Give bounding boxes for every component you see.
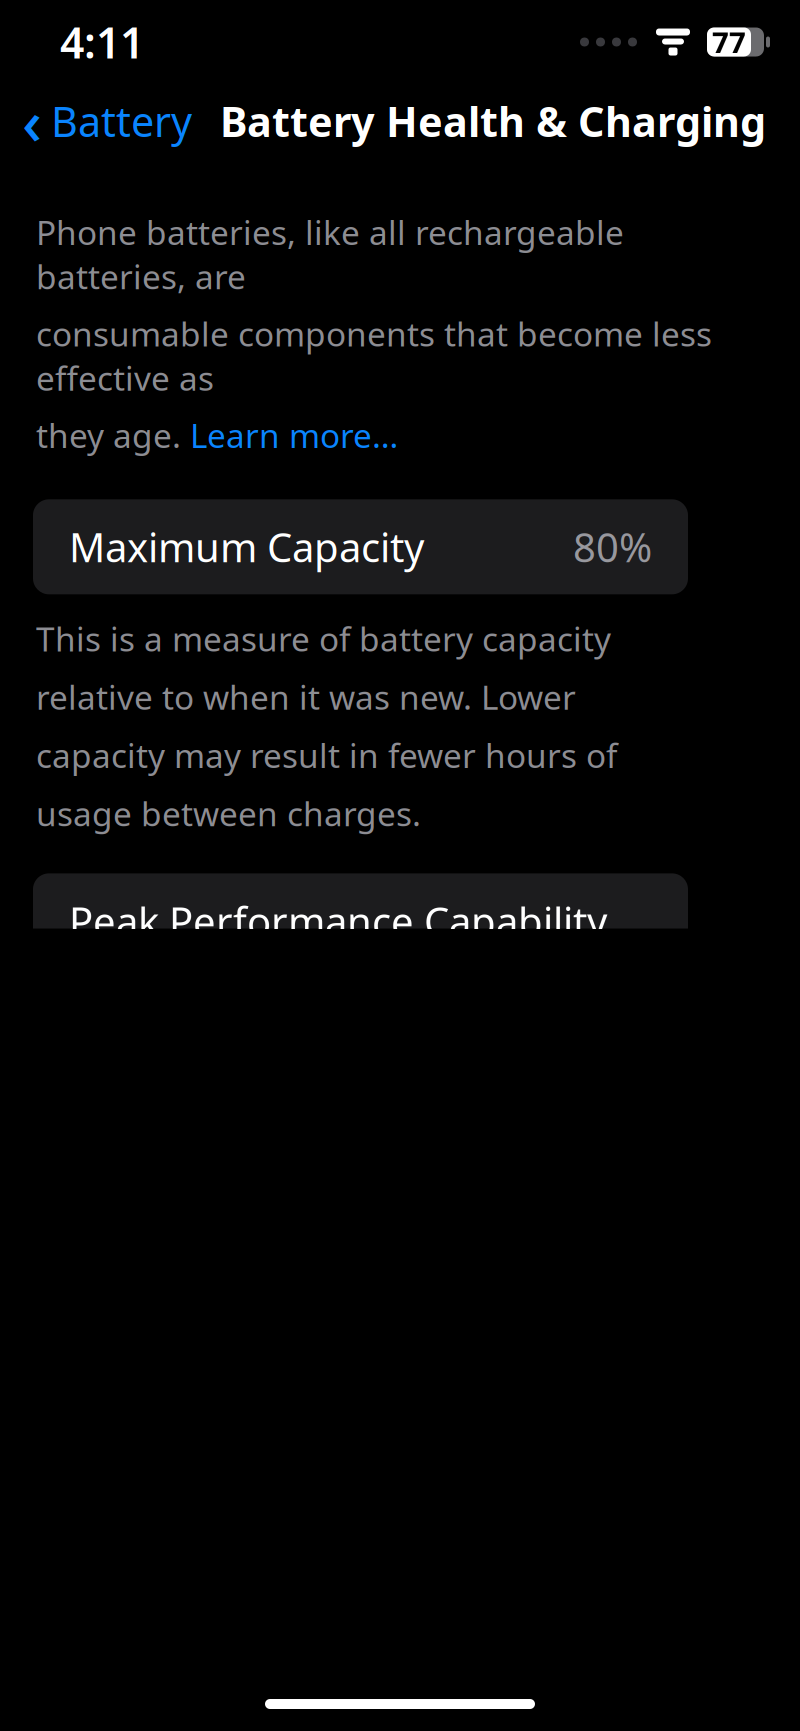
- staticText: 4:11: [60, 14, 144, 70]
- staticText: This is a measure of battery capacity re…: [36, 616, 617, 835]
- staticText: Battery: [51, 94, 192, 148]
- staticText: 80%: [573, 520, 652, 573]
- staticText: Phone batteries, like all rechargeable b…: [36, 210, 624, 298]
- staticText: Maximum Capacity: [69, 520, 424, 573]
- staticText: Peak Performance Capability: [69, 894, 607, 947]
- staticText: Battery Health & Charging: [220, 94, 766, 148]
- button[interactable]: ‹: [0, 72, 192, 170]
- staticText: Learn more…: [190, 413, 398, 457]
- staticText: 77: [712, 22, 746, 61]
- staticText: ‹: [22, 80, 42, 162]
- staticText: they age.: [36, 413, 190, 457]
- staticText: consumable components that become less e…: [36, 311, 712, 400]
- button[interactable]: Learn more…: [190, 413, 398, 457]
